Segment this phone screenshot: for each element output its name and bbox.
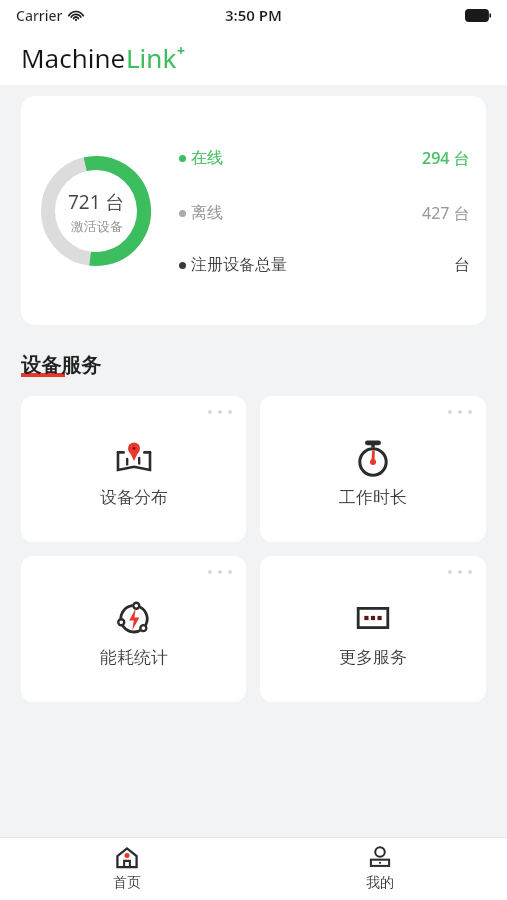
staticText: 721 台 xyxy=(68,189,125,215)
staticText: 首页 xyxy=(113,874,141,892)
staticText: 设备分布 xyxy=(100,487,168,508)
staticText: 能耗统计 xyxy=(100,647,168,668)
staticText: 427 台 xyxy=(422,202,470,224)
button[interactable]: 我的 xyxy=(253,838,507,900)
staticText: Link xyxy=(126,40,177,75)
staticText: 台 xyxy=(454,255,470,275)
staticText: 3:50 PM xyxy=(225,5,282,25)
staticText: + xyxy=(177,41,186,60)
staticText: 激活设备 xyxy=(71,218,123,234)
button[interactable]: 设备分布 xyxy=(21,396,246,542)
staticText: 在线 xyxy=(191,148,223,168)
button[interactable]: 首页 xyxy=(0,838,253,900)
staticText: 更多服务 xyxy=(339,647,407,668)
staticText: 注册设备总量 xyxy=(191,255,287,275)
staticText: 294 台 xyxy=(422,147,470,169)
staticText: 设备服务 xyxy=(21,353,101,378)
button[interactable]: 更多服务 xyxy=(260,556,486,702)
button[interactable]: 工作时长 xyxy=(260,396,486,542)
button[interactable]: 能耗统计 xyxy=(21,556,246,702)
staticText: Carrier xyxy=(16,6,63,25)
staticText: 离线 xyxy=(191,203,223,223)
button[interactable]: 721 台 xyxy=(21,96,486,325)
staticText: 工作时长 xyxy=(339,487,407,508)
staticText: Machine xyxy=(21,40,126,75)
staticText: 我的 xyxy=(366,874,394,892)
